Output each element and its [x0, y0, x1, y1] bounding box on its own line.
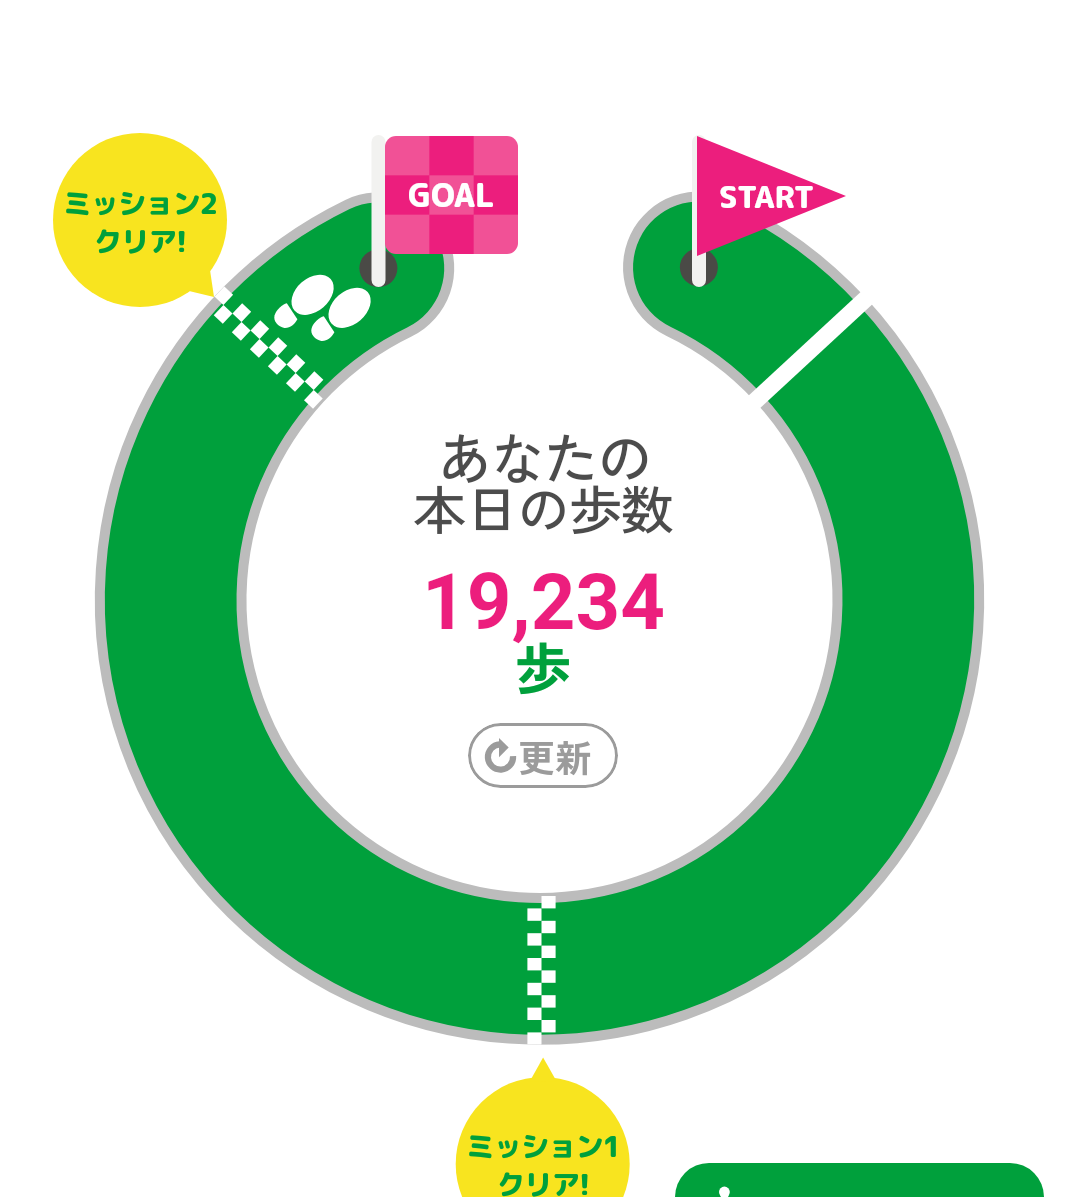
staticText: ミッション2 クリア!	[63, 183, 217, 261]
staticText: 歩	[515, 625, 571, 706]
button[interactable]: GOAL	[385, 136, 518, 254]
staticText: START	[719, 175, 815, 218]
button[interactable]: START	[700, 136, 834, 256]
staticText: 19,234	[422, 557, 665, 648]
button[interactable]: Menu	[675, 1163, 1044, 1197]
staticText: 本日の歩数	[413, 469, 673, 546]
staticText: GOAL	[408, 173, 495, 218]
button[interactable]: 更新 Refresh step count	[468, 723, 618, 788]
staticText: ミッション1 クリア!	[466, 1126, 620, 1197]
staticText: あなたの	[437, 415, 650, 496]
staticText: 更新	[518, 729, 592, 783]
